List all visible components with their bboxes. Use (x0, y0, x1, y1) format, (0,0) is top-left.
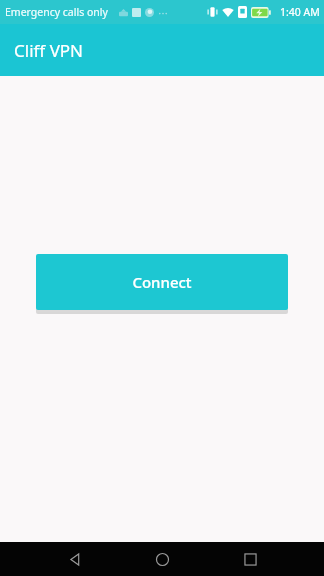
staticText: Connect (132, 272, 192, 292)
button[interactable]: Recent apps (206, 542, 294, 576)
button[interactable]: Connect (36, 254, 288, 310)
staticText: Cliff VPN (14, 39, 84, 62)
button[interactable]: Back (30, 542, 118, 576)
button[interactable]: Home (118, 542, 206, 576)
staticText: 1:40 AM (280, 5, 320, 19)
staticText: Emergency calls only (5, 5, 108, 19)
